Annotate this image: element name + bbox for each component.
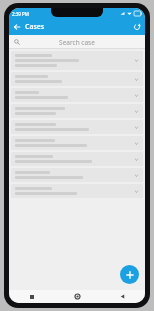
- button[interactable]: [11, 152, 143, 166]
- button[interactable]: Back: [100, 290, 145, 303]
- button[interactable]: Home: [55, 290, 100, 303]
- button[interactable]: Refresh: [129, 19, 145, 35]
- button[interactable]: Recents: [9, 290, 55, 303]
- staticText: Search case: [59, 38, 95, 47]
- button[interactable]: Search case: [9, 35, 145, 49]
- button[interactable]: [11, 120, 143, 134]
- staticText: Cases: [25, 22, 45, 32]
- button[interactable]: [11, 168, 143, 182]
- button[interactable]: Back: [9, 19, 25, 35]
- button[interactable]: Add case: [120, 265, 139, 284]
- button[interactable]: [11, 51, 143, 70]
- button[interactable]: [11, 88, 143, 102]
- button[interactable]: [11, 136, 143, 150]
- button[interactable]: [11, 72, 143, 86]
- button[interactable]: [11, 184, 143, 198]
- button[interactable]: [11, 104, 143, 118]
- staticText: 2:39 PM: [12, 11, 29, 17]
